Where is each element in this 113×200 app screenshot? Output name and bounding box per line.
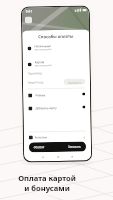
staticText: 0 xyxy=(84,135,86,138)
staticText: Промокод xyxy=(28,71,42,75)
staticText: Применить xyxy=(68,81,82,84)
staticText: и бонусами xyxy=(0,183,94,193)
button[interactable]: Добавить карту xyxy=(28,104,85,110)
staticText: Чаевые xyxy=(35,93,46,97)
staticText: -90.00 ₽ xyxy=(33,145,45,149)
staticText: Заказать xyxy=(68,145,82,149)
button[interactable]: Back xyxy=(25,16,32,23)
staticText: Оплата картой xyxy=(0,173,94,183)
staticText: при получении xyxy=(35,64,52,67)
staticText: Добавить карту xyxy=(35,106,57,110)
button[interactable]: Бонусами xyxy=(29,133,86,140)
button[interactable]: Наличными xyxy=(27,44,84,51)
staticText: Способы оплаты xyxy=(27,34,84,40)
staticText: Наличными xyxy=(34,44,51,48)
staticText: при получении xyxy=(34,48,51,51)
button[interactable]: Применить xyxy=(64,79,85,85)
button[interactable]: Чаевые xyxy=(28,92,85,97)
button[interactable]: -90.00 ₽ xyxy=(29,141,86,152)
staticText: 9:41 xyxy=(26,9,33,13)
staticText: Введите код xyxy=(28,80,44,84)
staticText: Бонусами xyxy=(35,135,48,139)
button[interactable]: Картой xyxy=(28,60,85,67)
staticText: Картой xyxy=(35,60,45,64)
